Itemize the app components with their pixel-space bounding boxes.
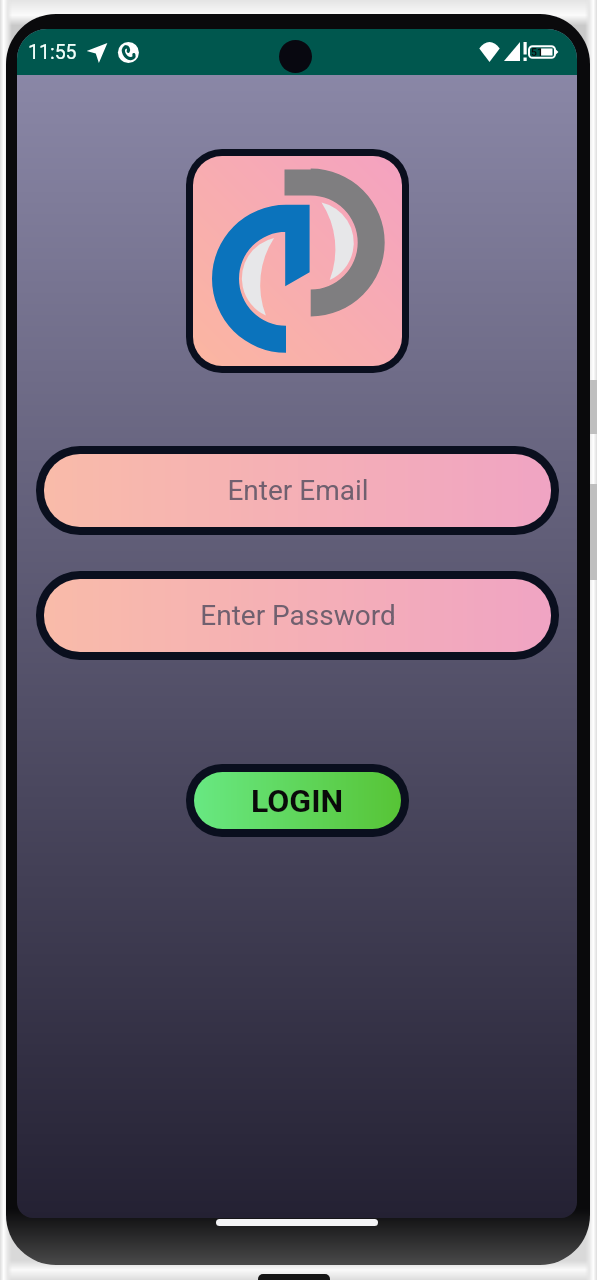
button[interactable]: LOGIN [194,772,401,829]
button[interactable]: Enter Email [44,454,551,527]
button[interactable]: App logo [193,156,402,366]
staticText: Enter Password [200,599,396,632]
button[interactable]: Enter Password [44,579,551,652]
staticText: Enter Email [227,474,369,507]
staticText: 51 [531,46,544,58]
staticText: 11:55 [28,41,77,64]
staticText: LOGIN [251,782,344,820]
